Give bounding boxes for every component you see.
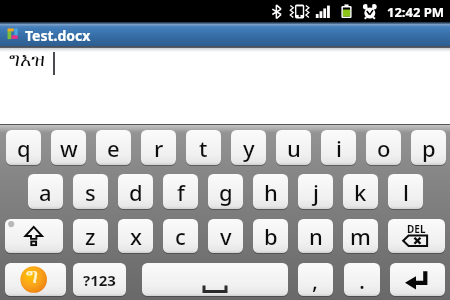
staticText: ?123 [83, 270, 116, 290]
button[interactable]: s [73, 174, 108, 209]
staticText: a [39, 177, 52, 207]
button[interactable]: w [51, 130, 86, 165]
button[interactable]: f [163, 174, 198, 209]
button[interactable]: . [344, 263, 380, 296]
button[interactable]: Change language [5, 263, 66, 296]
button[interactable]: z [73, 219, 108, 253]
staticText: DEL [407, 222, 426, 236]
button[interactable]: n [298, 219, 333, 253]
button[interactable]: q [6, 130, 41, 165]
button[interactable]: g [208, 174, 243, 209]
button[interactable]: v [208, 219, 243, 253]
staticText: , [312, 265, 319, 295]
button[interactable]: Shift [5, 219, 63, 253]
button[interactable]: Test.docx [0, 22, 450, 46]
staticText: . [359, 265, 365, 295]
staticText: s [85, 177, 96, 207]
button[interactable]: y [231, 130, 266, 165]
staticText: ግእዝ [9, 51, 45, 70]
staticText: y [243, 133, 255, 163]
button[interactable]: e [96, 130, 131, 165]
button[interactable]: Enter [390, 263, 445, 296]
staticText: r [154, 133, 164, 163]
staticText: ግ [26, 266, 39, 287]
staticText: f [177, 177, 185, 207]
staticText: z [85, 221, 96, 251]
staticText: i [336, 133, 342, 163]
staticText: b [264, 221, 278, 251]
staticText: Test.docx [25, 26, 91, 45]
staticText: n [309, 221, 323, 251]
staticText: u [287, 133, 301, 163]
staticText: g [219, 177, 233, 207]
button[interactable]: c [163, 219, 198, 253]
staticText: q [17, 133, 31, 163]
staticText: o [377, 133, 391, 163]
staticText: p [422, 133, 436, 163]
staticText: v [220, 221, 232, 251]
button[interactable]: , [298, 263, 333, 296]
button[interactable]: h [253, 174, 288, 209]
button[interactable]: d [118, 174, 153, 209]
button[interactable]: Space [142, 263, 288, 296]
button[interactable]: l [388, 174, 423, 209]
button[interactable]: t [186, 130, 221, 165]
button[interactable]: u [276, 130, 311, 165]
staticText: c [175, 221, 186, 251]
button[interactable]: r [141, 130, 176, 165]
button[interactable]: m [343, 219, 378, 253]
button[interactable]: i [321, 130, 356, 165]
staticText: 12:42 PM [387, 3, 445, 21]
button[interactable]: Delete [388, 219, 445, 253]
staticText: m [350, 221, 371, 251]
staticText: x [130, 221, 142, 251]
button[interactable]: k [343, 174, 378, 209]
staticText: k [354, 177, 367, 207]
staticText: l [403, 177, 409, 207]
button[interactable]: a [28, 174, 63, 209]
button[interactable]: x [118, 219, 153, 253]
button[interactable]: p [411, 130, 446, 165]
button[interactable]: b [253, 219, 288, 253]
staticText: d [129, 177, 143, 207]
staticText: e [107, 133, 120, 163]
staticText: j [313, 177, 319, 207]
staticText: h [264, 177, 278, 207]
button[interactable]: ?123 [73, 263, 126, 296]
staticText: w [60, 133, 78, 163]
button[interactable]: o [366, 130, 401, 165]
staticText: t [199, 133, 208, 163]
button[interactable]: j [298, 174, 333, 209]
